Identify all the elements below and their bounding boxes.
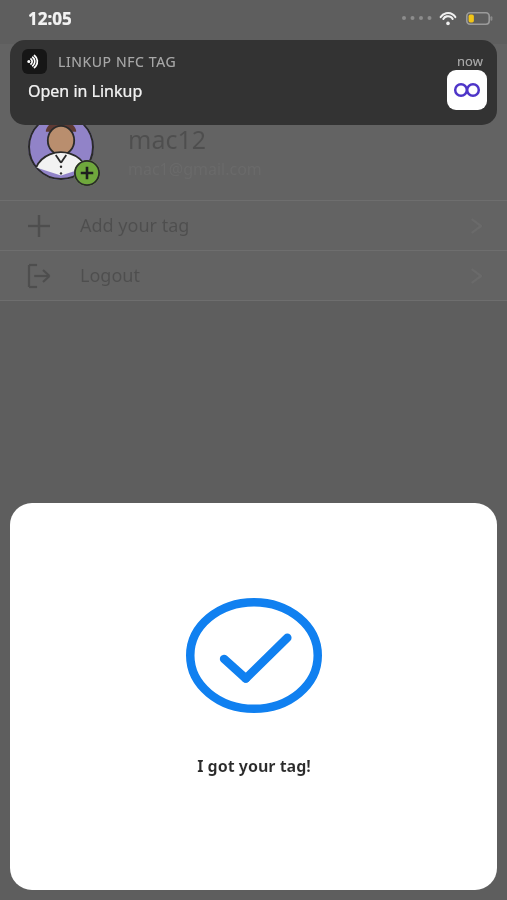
staticText: LINKUP NFC TAG <box>58 52 177 71</box>
staticText: I got your tag! <box>197 755 311 777</box>
staticText: now <box>457 52 483 70</box>
staticText: mac12 <box>128 122 207 156</box>
staticText: Open in Linkup <box>28 80 143 102</box>
button[interactable]: I got your tag! <box>10 503 497 890</box>
staticText: Add your tag <box>80 213 190 238</box>
button[interactable]: LINKUP NFC TAG <box>10 40 497 125</box>
button[interactable]: mac12 <box>0 114 507 200</box>
staticText: Logout <box>80 263 140 288</box>
staticText: 12:05 <box>28 7 72 30</box>
other: Linkup app icon <box>447 70 487 110</box>
